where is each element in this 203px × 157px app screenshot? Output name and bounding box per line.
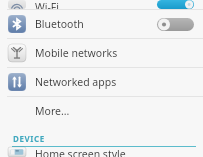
staticText: Home screen style [35, 147, 203, 157]
button[interactable]: Wi-Fi [0, 0, 203, 9]
other: Bluetooth [8, 15, 26, 33]
staticText: Networked apps [35, 75, 203, 89]
other: Home screen style [8, 147, 26, 157]
button[interactable]: More... [0, 97, 203, 125]
button[interactable]: Home screen style [0, 147, 203, 157]
staticText: Mobile networks [35, 46, 203, 60]
other: Networked apps [8, 73, 26, 91]
staticText: Wi-Fi [35, 0, 60, 9]
button[interactable]: Toggle off [157, 18, 194, 31]
button[interactable]: Networked apps [0, 68, 203, 96]
staticText: DEVICE [13, 133, 45, 144]
button[interactable]: Bluetooth [0, 10, 203, 38]
button[interactable]: Mobile networks [0, 39, 203, 67]
other: Mobile networks [8, 44, 26, 62]
staticText: Bluetooth [35, 17, 155, 31]
button[interactable]: Toggle on [157, 0, 194, 9]
staticText: More... [35, 104, 203, 118]
